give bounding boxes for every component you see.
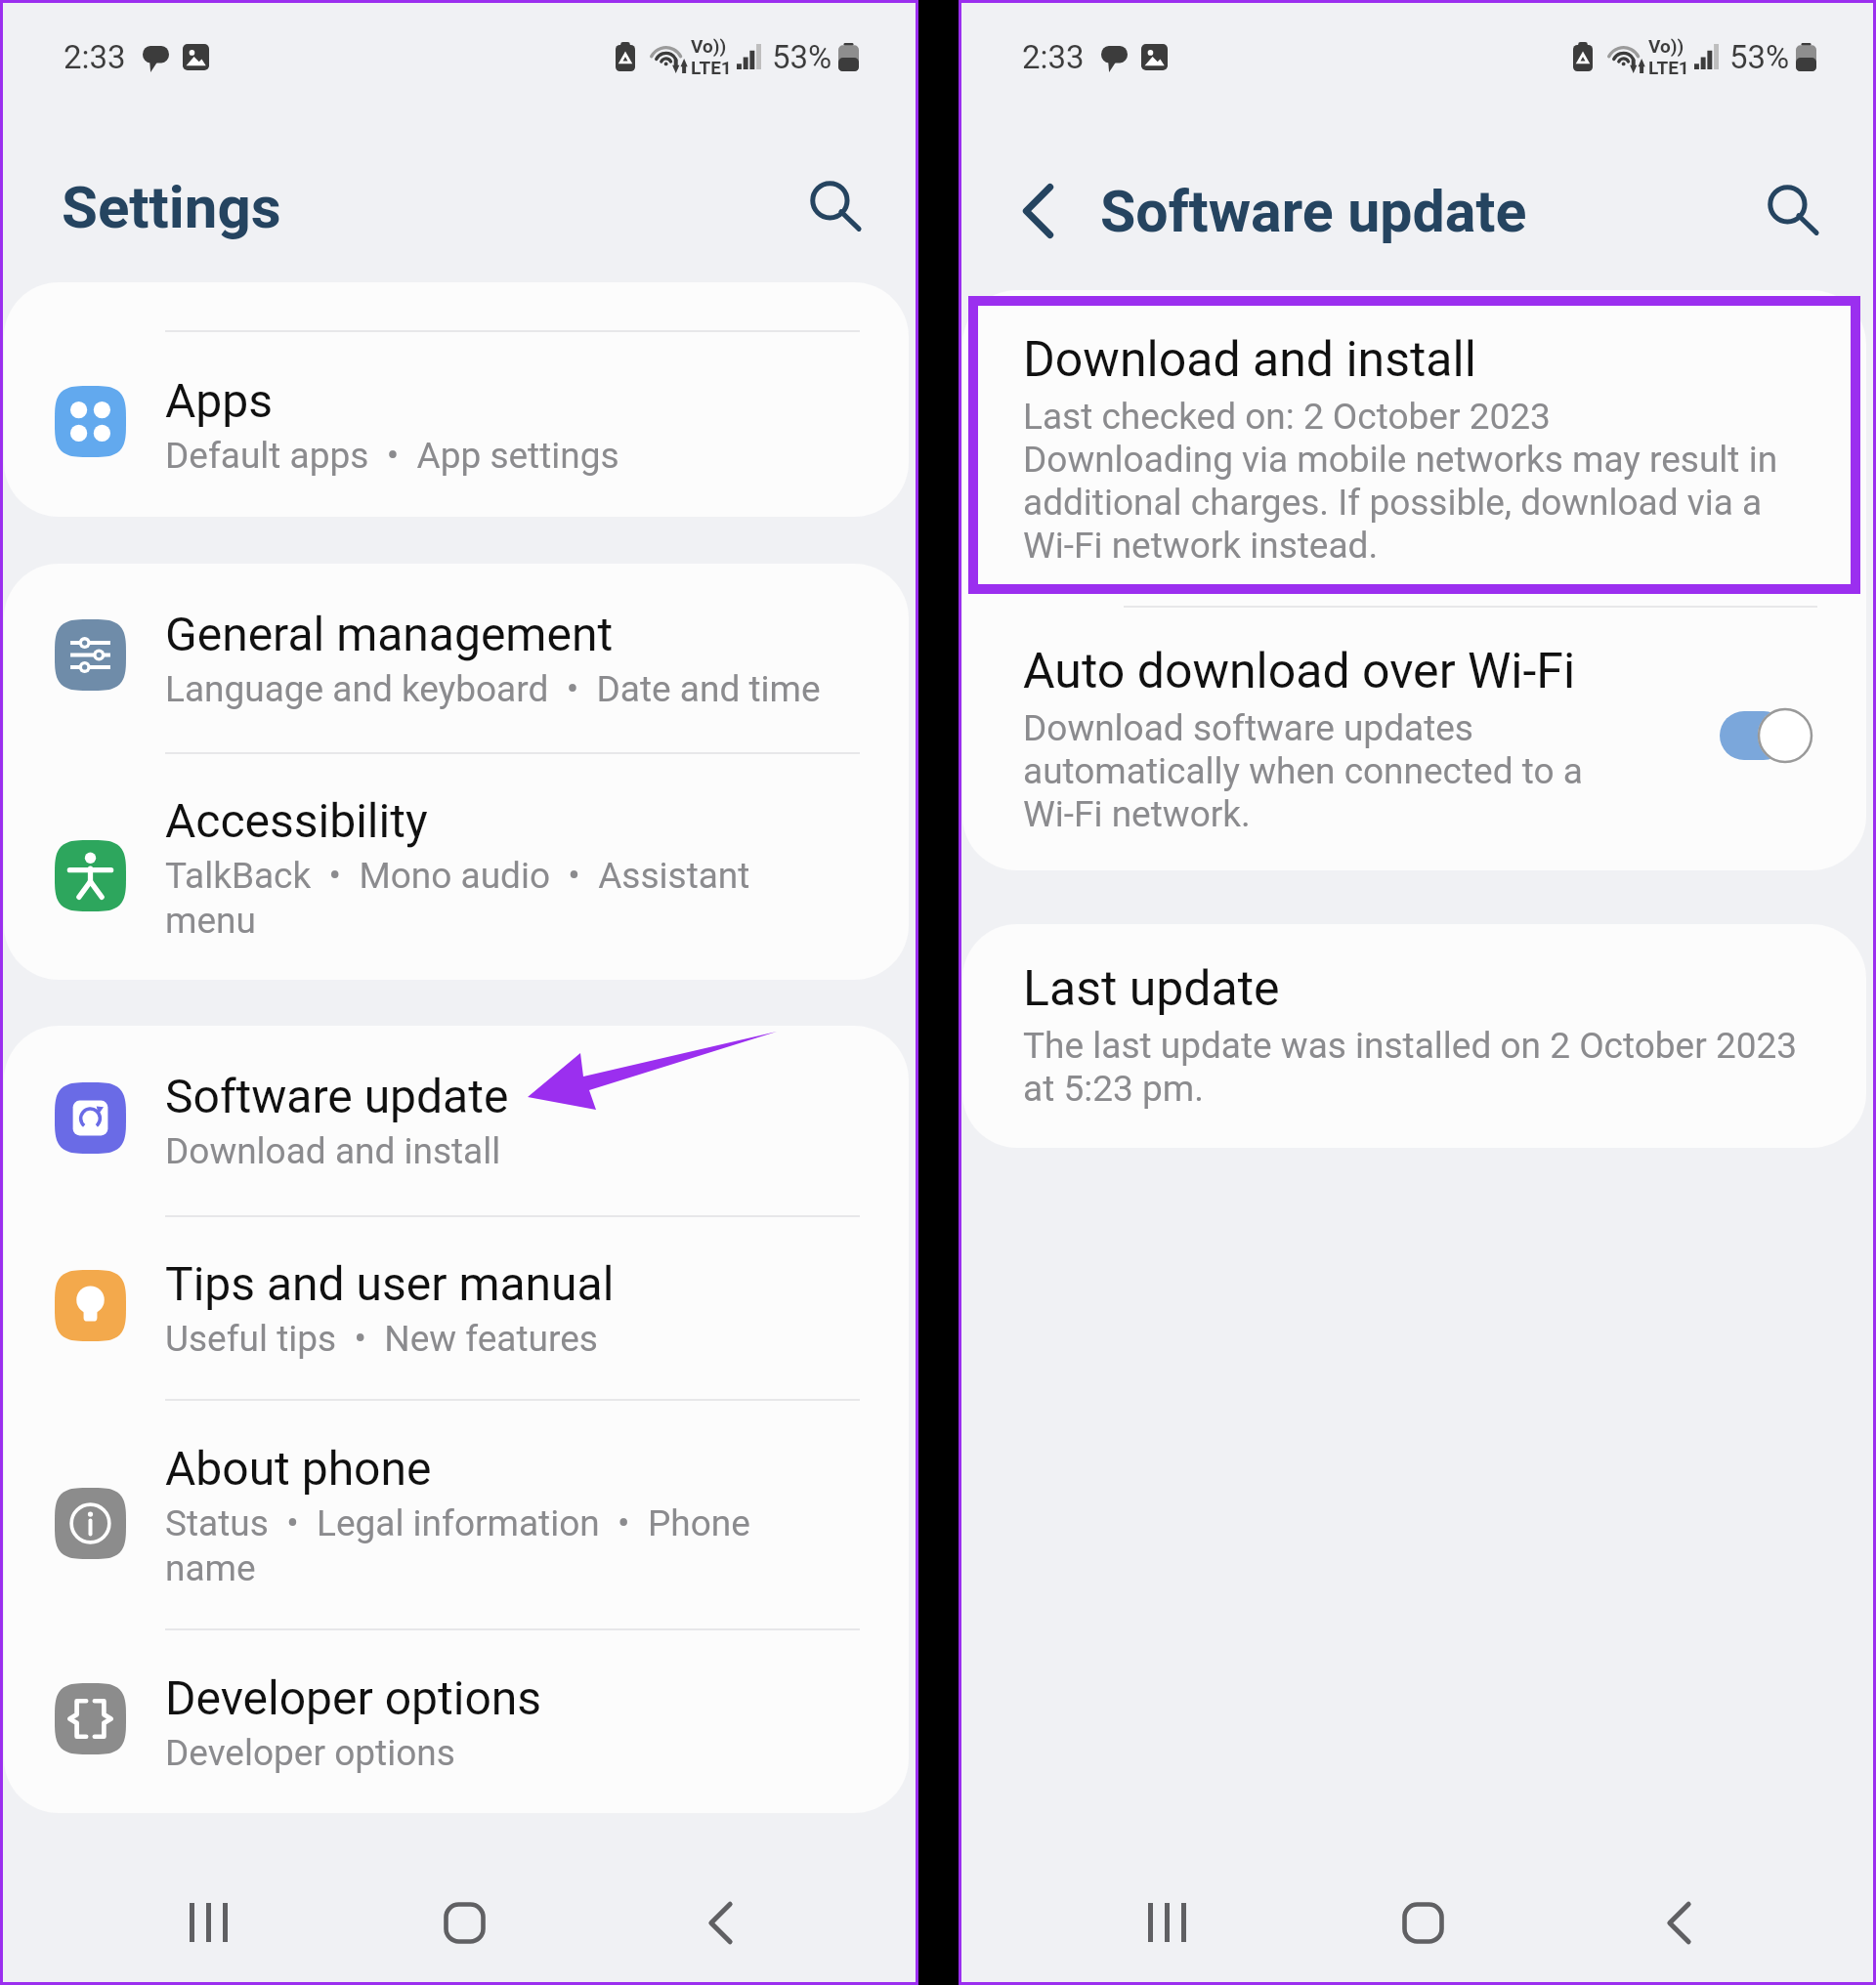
button[interactable]: Home — [405, 1863, 524, 1982]
button[interactable]: Home — [1363, 1863, 1482, 1982]
staticText: Auto download over Wi-Fi — [1023, 643, 1576, 700]
staticText: Useful tips • New features — [165, 1318, 598, 1360]
staticText: Software update — [1100, 178, 1527, 245]
staticText: Settings — [62, 173, 281, 241]
staticText: 2:33 — [1022, 38, 1085, 76]
staticText: Last update — [1023, 960, 1280, 1018]
button[interactable]: Accessibility — [4, 754, 909, 980]
button[interactable]: Tips and user manual — [4, 1217, 909, 1399]
staticText: LTE1 — [691, 57, 732, 78]
staticText: Download software updates automatically … — [1023, 707, 1583, 835]
button[interactable]: Last update — [962, 924, 1866, 1148]
button[interactable]: Auto download over Wi-Fi — [1720, 707, 1812, 764]
button[interactable]: Auto download over Wi-Fi — [962, 608, 1866, 870]
staticText: Vo)) — [1648, 35, 1684, 57]
staticText: Tips and user manual — [165, 1256, 615, 1311]
staticText: Language and keyboard • Date and time — [165, 668, 821, 710]
staticText: About phone — [165, 1441, 432, 1496]
staticText: TalkBack • Mono audio • Assistant menu — [165, 855, 750, 942]
button[interactable]: Back — [1619, 1863, 1738, 1982]
button[interactable]: Download and install — [962, 290, 1866, 606]
button[interactable]: About phone — [4, 1401, 909, 1628]
button[interactable]: Search — [1742, 160, 1844, 262]
staticText: Vo)) — [691, 35, 727, 57]
staticText: Download and install — [165, 1130, 501, 1172]
staticText: Accessibility — [165, 793, 428, 848]
button[interactable]: Search — [785, 156, 886, 258]
button[interactable]: Software update — [4, 1026, 909, 1215]
staticText: The last update was installed on 2 Octob… — [1023, 1025, 1798, 1110]
staticText: Developer options — [165, 1670, 542, 1725]
button[interactable]: Apps — [4, 332, 909, 517]
staticText: Developer options — [165, 1732, 455, 1774]
staticText: Software update — [165, 1069, 509, 1123]
staticText: Last checked on: 2 October 2023 Download… — [1023, 396, 1778, 567]
staticText: Default apps • App settings — [165, 435, 619, 477]
button[interactable]: Back — [661, 1863, 780, 1982]
button[interactable]: Developer options — [4, 1630, 909, 1813]
staticText: LTE1 — [1648, 57, 1689, 78]
staticText: 53% — [772, 38, 832, 76]
staticText: General management — [165, 607, 614, 661]
staticText: 53% — [1729, 38, 1790, 76]
button[interactable]: Recent apps — [149, 1863, 268, 1982]
staticText: 2:33 — [64, 38, 126, 76]
staticText: Apps — [165, 373, 273, 428]
button[interactable]: Back — [991, 164, 1085, 258]
button[interactable]: General management — [4, 564, 909, 752]
staticText: Download and install — [1023, 331, 1476, 389]
button[interactable]: Recent apps — [1107, 1863, 1226, 1982]
staticText: Status • Legal information • Phone name — [165, 1502, 750, 1589]
